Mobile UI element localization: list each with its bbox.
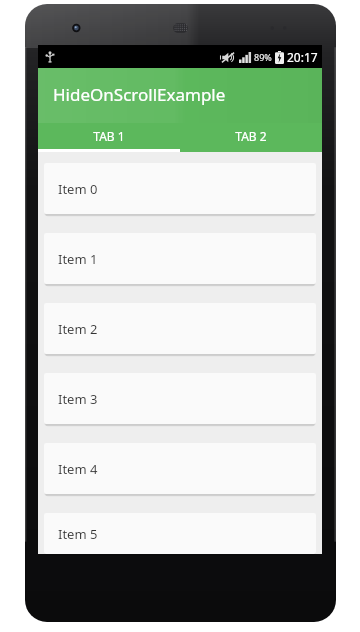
- staticText: HideOnScrollExample: [53, 83, 226, 106]
- staticText: Item 5: [58, 525, 98, 543]
- button[interactable]: TAB 2: [180, 123, 322, 152]
- staticText: 89%: [254, 51, 272, 63]
- staticText: 20:17: [287, 49, 318, 65]
- button[interactable]: Item 4: [44, 443, 316, 494]
- staticText: Item 2: [58, 320, 98, 338]
- staticText: Item 0: [58, 180, 98, 198]
- button[interactable]: Item 3: [44, 373, 316, 424]
- button[interactable]: Item 2: [44, 303, 316, 354]
- staticText: Item 1: [58, 250, 98, 268]
- staticText: Item 4: [58, 460, 98, 478]
- button[interactable]: Item 1: [44, 233, 316, 284]
- button[interactable]: Item 5: [44, 513, 316, 554]
- staticText: TAB 1: [93, 128, 125, 144]
- staticText: TAB 2: [235, 128, 267, 144]
- button[interactable]: TAB 1: [38, 123, 180, 152]
- button[interactable]: Item 0: [44, 163, 316, 214]
- staticText: Item 3: [58, 390, 98, 408]
